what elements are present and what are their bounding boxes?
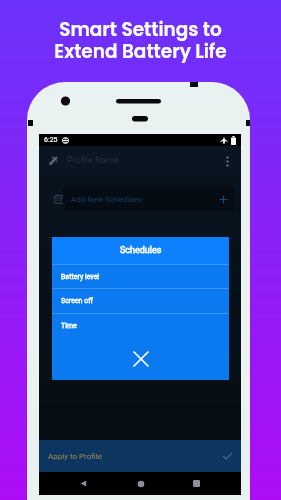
- button[interactable]: Back: [72, 472, 95, 495]
- button[interactable]: Add New Schedules: [63, 187, 234, 211]
- staticText: Add New Schedules: [71, 195, 142, 204]
- button[interactable]: Home: [129, 472, 152, 495]
- staticText: Smart Settings to Extend Battery Life: [54, 17, 227, 65]
- staticText: 6:25: [44, 136, 58, 144]
- button[interactable]: Battery level: [52, 264, 229, 288]
- button[interactable]: Apply to Profile: [39, 440, 241, 472]
- button[interactable]: Screen off: [52, 288, 229, 313]
- staticText: Time: [61, 322, 77, 330]
- button[interactable]: Time: [52, 313, 229, 338]
- button[interactable]: More options: [220, 154, 234, 168]
- staticText: Apply to Profile: [48, 452, 102, 461]
- staticText: Screen off: [61, 297, 94, 305]
- staticText: Schedules: [120, 245, 162, 256]
- button[interactable]: Close: [52, 338, 229, 380]
- staticText: Battery level: [61, 273, 100, 281]
- staticText: Profile Name: [67, 155, 119, 166]
- button[interactable]: Recent apps: [185, 472, 208, 495]
